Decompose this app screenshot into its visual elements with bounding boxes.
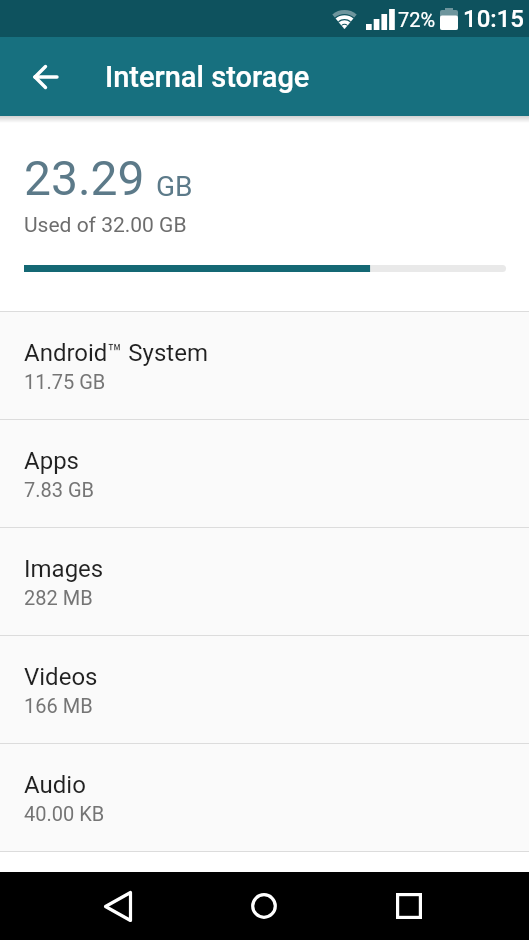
staticText: Apps [24, 447, 79, 475]
staticText: 7.83 GB [24, 478, 95, 501]
button[interactable]: Android™ System [0, 312, 529, 419]
staticText: Android™ System [24, 339, 208, 367]
button[interactable] [74, 872, 162, 940]
staticText: Audio [24, 771, 86, 799]
staticText: 40.00 KB [24, 802, 105, 825]
button[interactable]: Videos [0, 636, 529, 743]
button[interactable] [10, 37, 82, 116]
staticText: Images [24, 555, 104, 583]
staticText: 282 MB [24, 586, 93, 609]
button[interactable]: Apps [0, 420, 529, 527]
staticText: Used of 32.00 GB [24, 213, 187, 238]
staticText: Videos [24, 663, 98, 691]
staticText: 10:15 [463, 5, 524, 33]
staticText: GB [156, 170, 193, 203]
button[interactable] [220, 872, 308, 940]
button[interactable] [365, 872, 453, 940]
staticText: 23.29 [24, 150, 145, 206]
button[interactable]: Audio [0, 744, 529, 851]
staticText: Internal storage [105, 60, 310, 94]
button[interactable]: Images [0, 528, 529, 635]
staticText: 11.75 GB [24, 370, 106, 393]
staticText: 166 MB [24, 694, 93, 717]
staticText: 72% [398, 8, 436, 31]
